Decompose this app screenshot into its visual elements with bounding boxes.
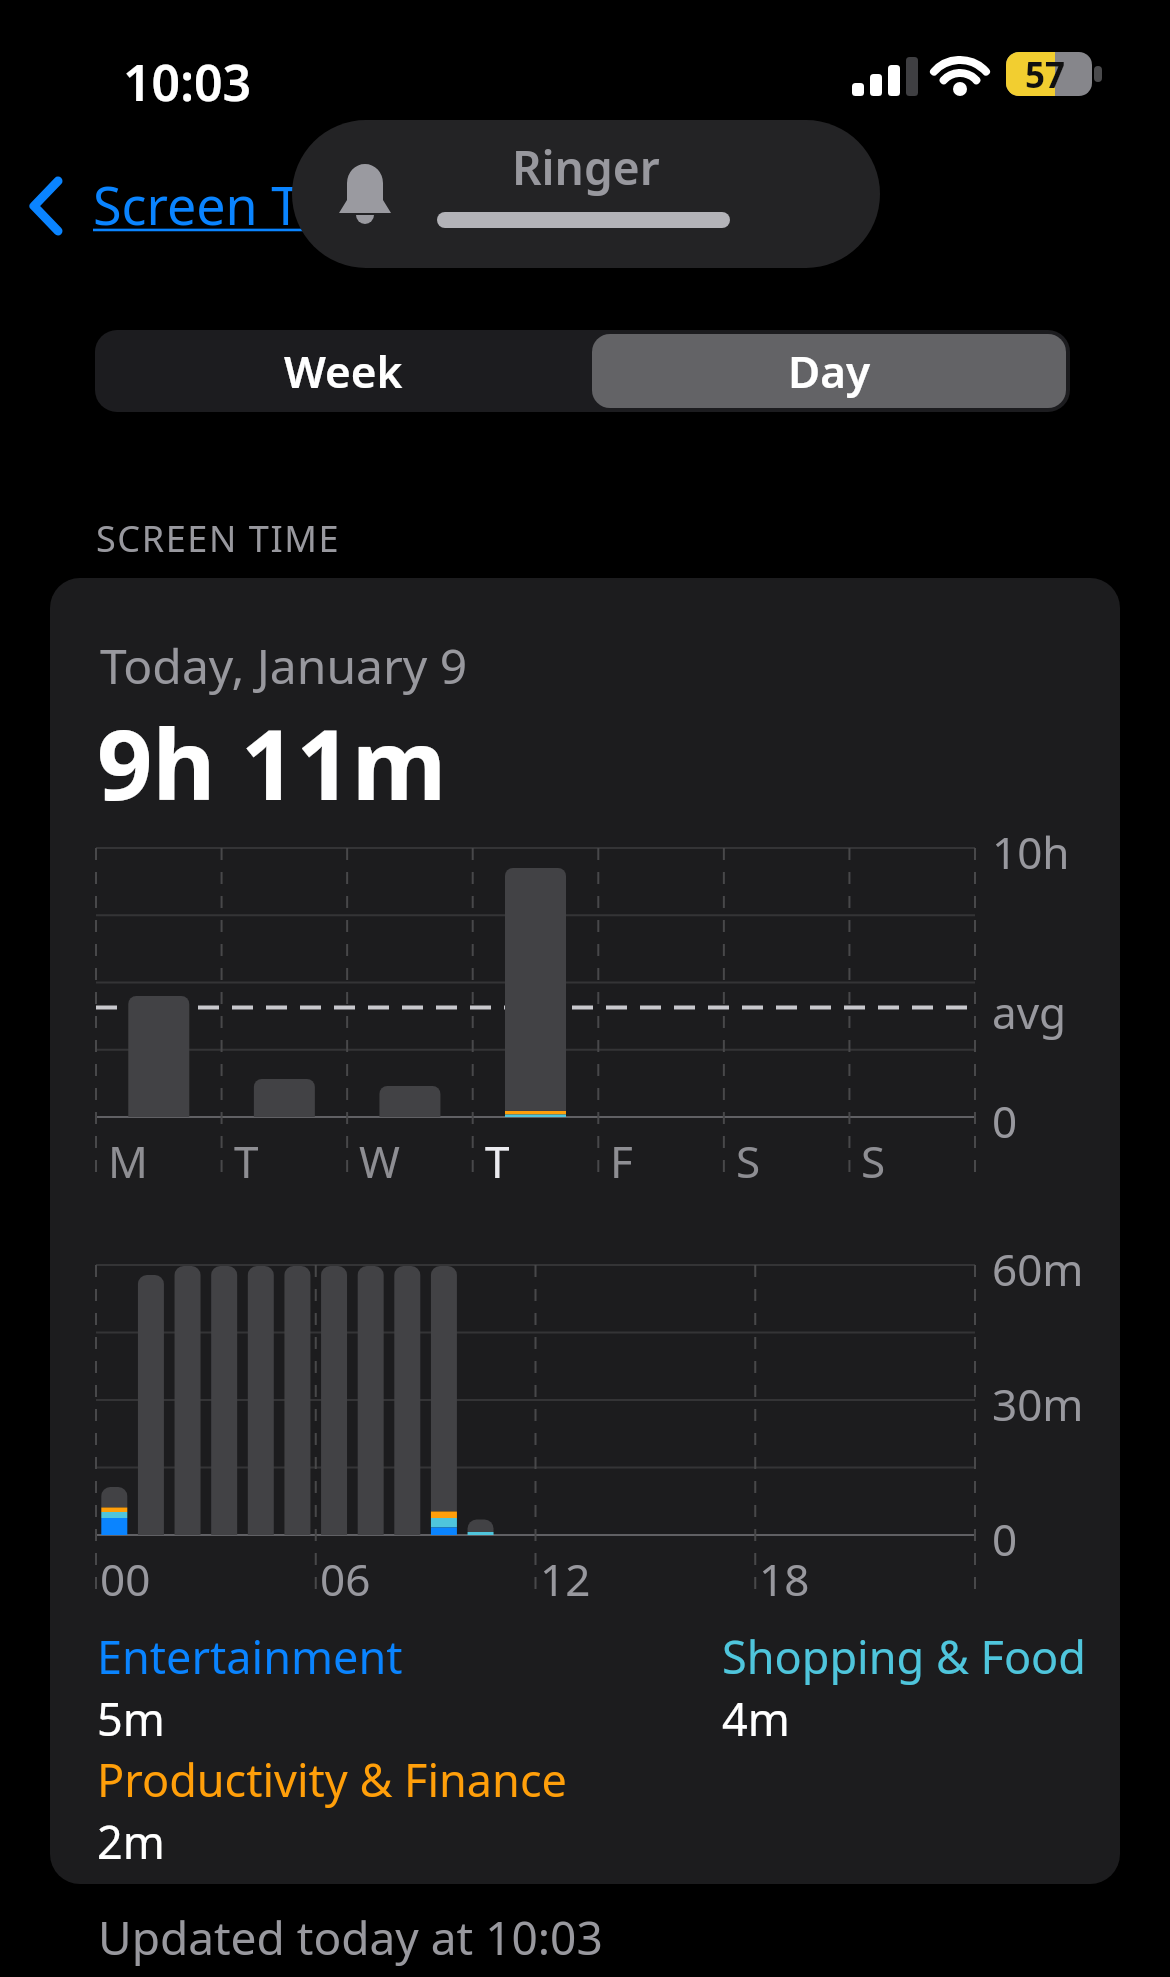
staticText: T bbox=[485, 1131, 510, 1191]
staticText: 00 bbox=[100, 1549, 151, 1609]
staticText: 0 bbox=[992, 1509, 1018, 1569]
staticText: Ringer bbox=[512, 136, 660, 199]
staticText: 57 bbox=[1025, 51, 1066, 99]
staticText: 60m bbox=[992, 1239, 1084, 1299]
staticText: 5m bbox=[97, 1688, 165, 1749]
staticText: 12 bbox=[540, 1549, 591, 1609]
staticText: SCREEN TIME bbox=[96, 514, 341, 563]
staticText: S bbox=[861, 1131, 886, 1191]
staticText: 06 bbox=[320, 1549, 371, 1609]
staticText: Shopping & Food bbox=[722, 1626, 1087, 1687]
staticText: 2m bbox=[97, 1811, 165, 1872]
staticText: M bbox=[108, 1131, 148, 1191]
staticText: Week bbox=[284, 341, 403, 401]
button[interactable]: Day bbox=[592, 334, 1066, 408]
staticText: 0 bbox=[992, 1091, 1018, 1151]
staticText: Screen Time bbox=[93, 169, 392, 240]
staticText: T bbox=[234, 1131, 259, 1191]
staticText: 10:03 bbox=[123, 48, 252, 116]
staticText: Entertainment bbox=[97, 1626, 403, 1687]
staticText: W bbox=[359, 1131, 400, 1191]
staticText: Today, January 9 bbox=[100, 633, 468, 698]
button[interactable]: Screen Time bbox=[20, 165, 440, 245]
staticText: 4m bbox=[722, 1688, 790, 1749]
staticText: 18 bbox=[759, 1549, 810, 1609]
staticText: 10h bbox=[992, 822, 1070, 882]
staticText: Day bbox=[788, 341, 871, 401]
button[interactable]: Week bbox=[95, 330, 592, 412]
staticText: 9h 11m bbox=[97, 696, 447, 828]
staticText: S bbox=[736, 1131, 761, 1191]
staticText: Productivity & Finance bbox=[97, 1749, 567, 1810]
staticText: 30m bbox=[992, 1374, 1084, 1434]
staticText: F bbox=[610, 1131, 633, 1191]
staticText: Updated today at 10:03 bbox=[98, 1906, 603, 1969]
staticText: avg bbox=[992, 982, 1067, 1042]
